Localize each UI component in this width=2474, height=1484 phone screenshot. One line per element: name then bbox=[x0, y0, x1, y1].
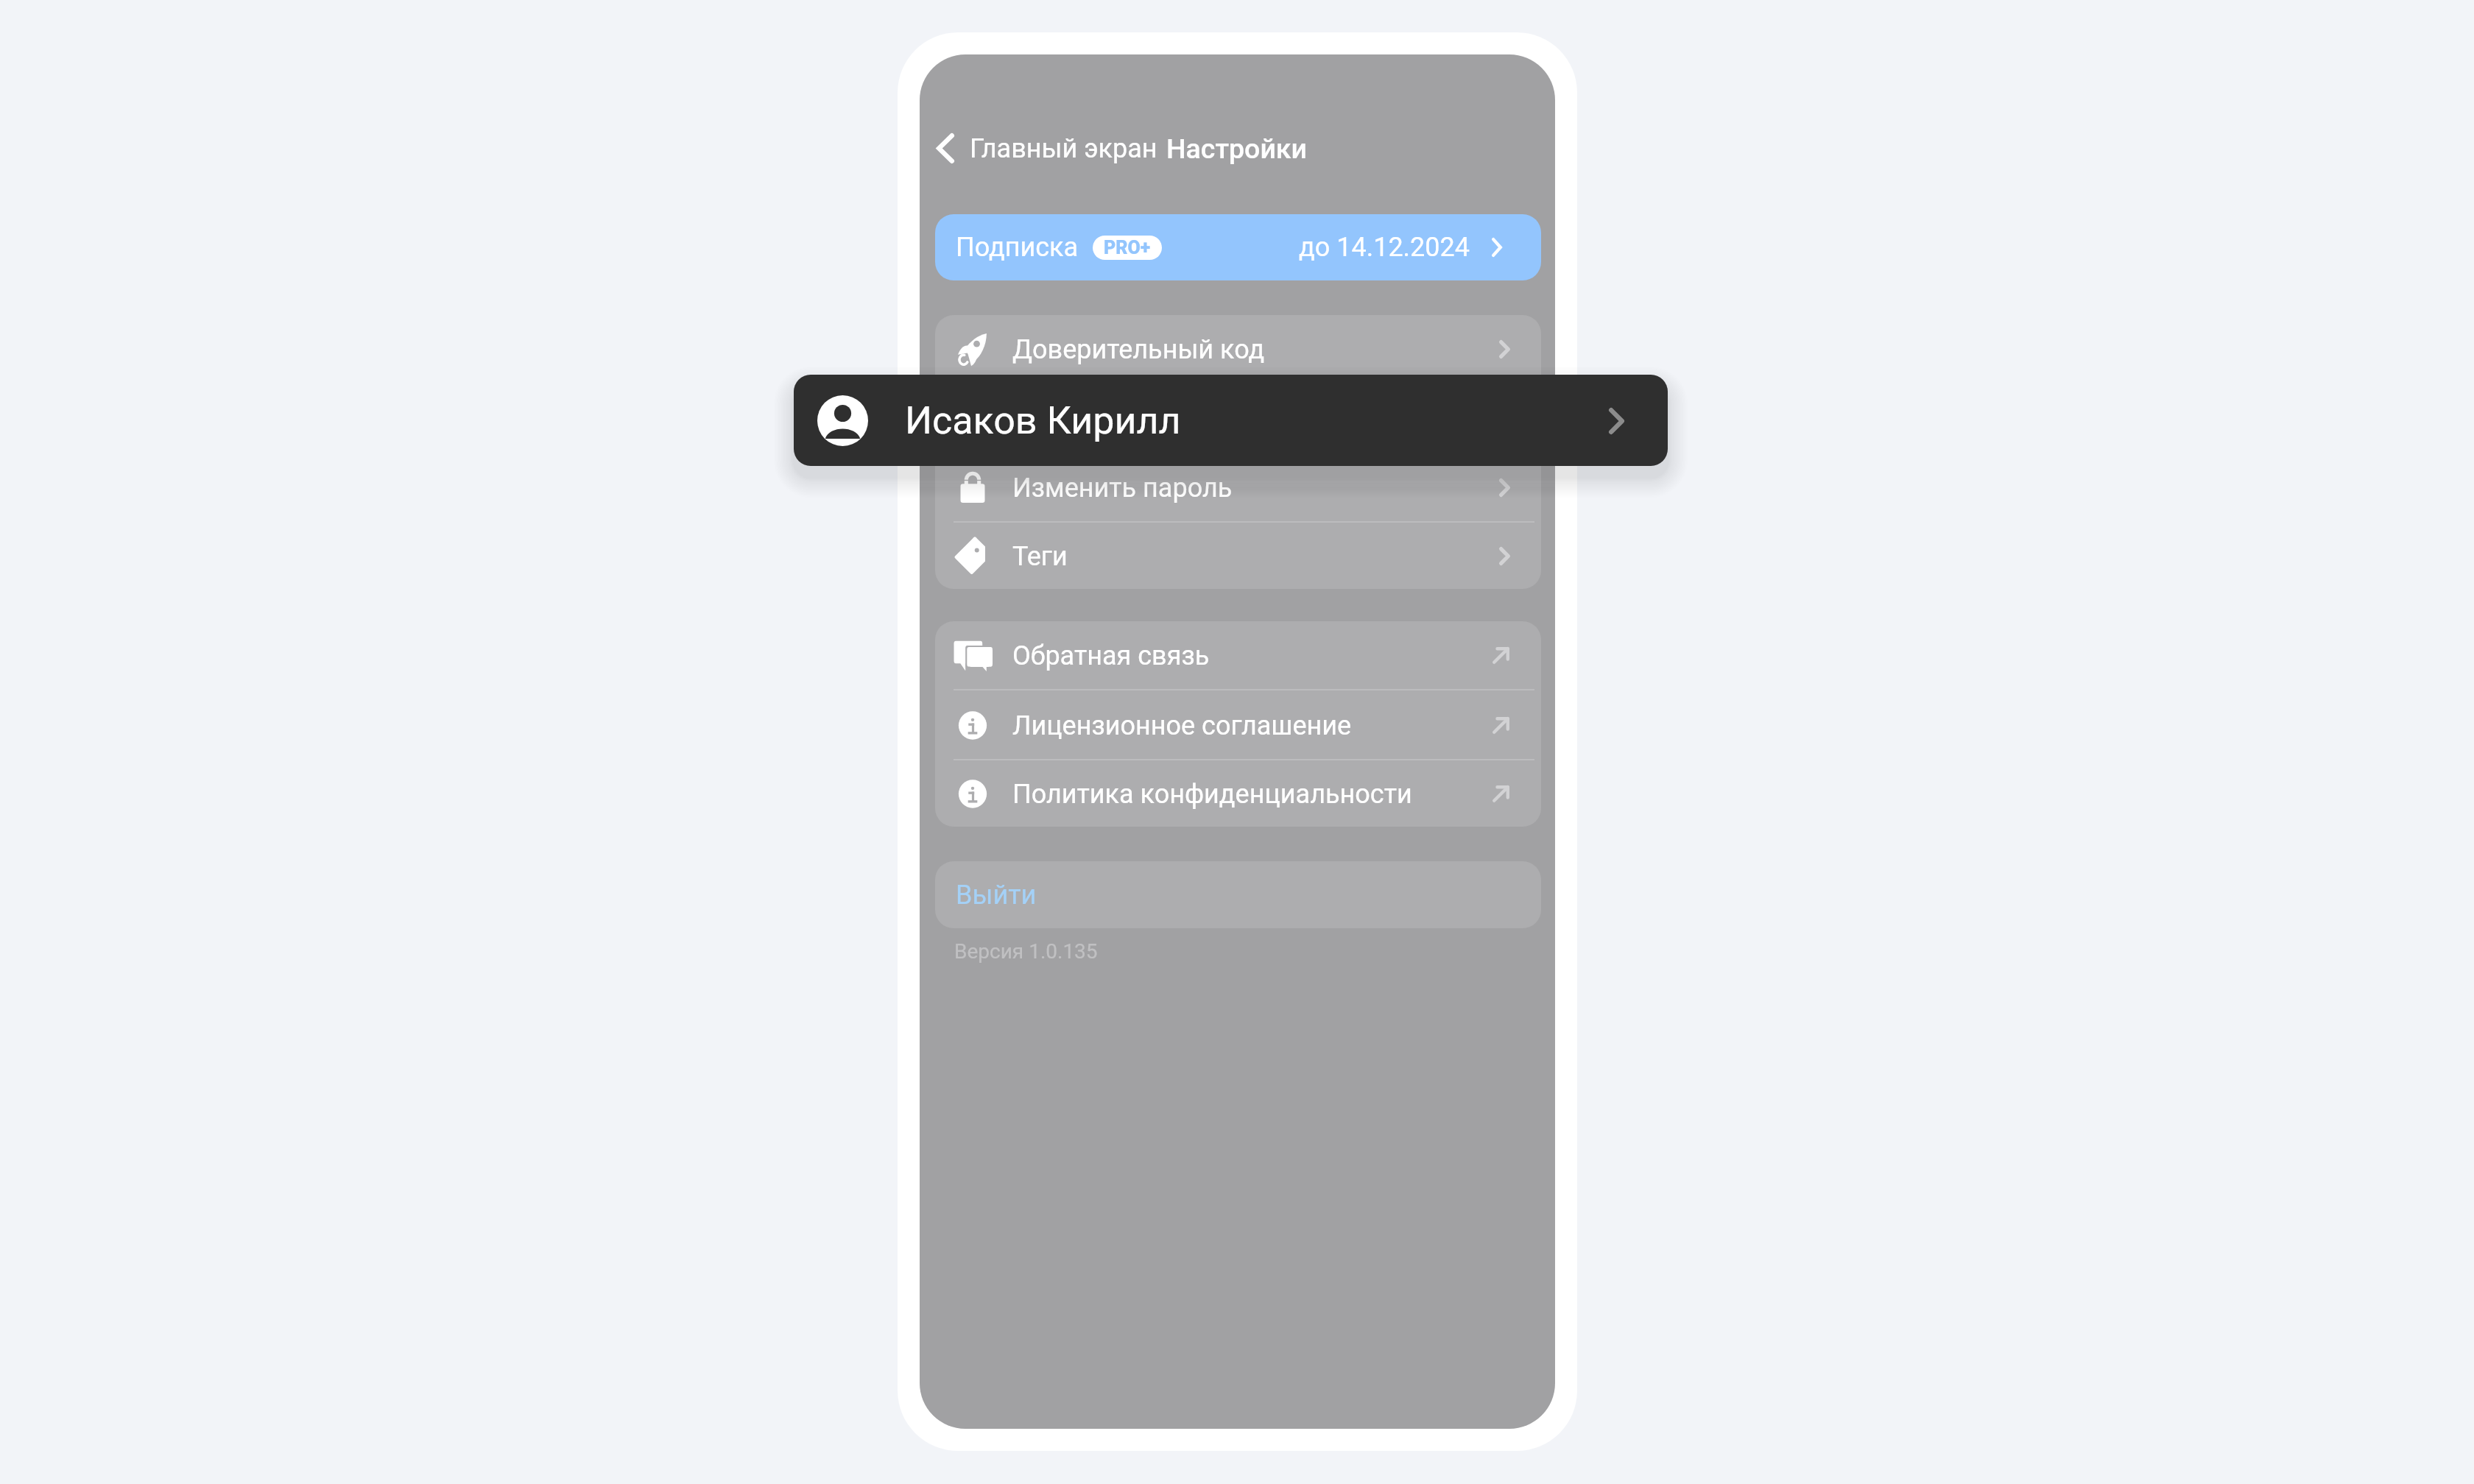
button[interactable]: Лицензионное соглашение bbox=[935, 691, 1541, 760]
staticText: Доверительный код bbox=[1012, 334, 1265, 365]
staticText: Политика конфиденциальности bbox=[1012, 779, 1412, 810]
staticText: Обратная связь bbox=[1012, 640, 1210, 671]
staticText: Главный экран bbox=[970, 133, 1157, 164]
staticText: Настройки bbox=[1166, 132, 1307, 165]
button[interactable]: Back bbox=[922, 117, 969, 180]
button[interactable]: Выйти bbox=[935, 861, 1541, 928]
staticText: PRO+ bbox=[1104, 237, 1151, 258]
button[interactable]: Исаков Кирилл bbox=[794, 375, 1668, 466]
button[interactable]: Политика конфиденциальности bbox=[935, 761, 1541, 827]
button[interactable]: Теги bbox=[935, 523, 1541, 589]
staticText: Версия 1.0.135 bbox=[954, 939, 1098, 964]
button[interactable]: Подписка bbox=[935, 214, 1541, 280]
staticText: Теги bbox=[1012, 541, 1068, 572]
staticText: Подписка bbox=[956, 232, 1079, 263]
button[interactable]: Обратная связь bbox=[935, 621, 1541, 690]
staticText: Исаков Кирилл bbox=[905, 398, 1181, 443]
button[interactable]: Изменить пароль bbox=[935, 453, 1541, 522]
button[interactable]: Доверительный код bbox=[935, 315, 1541, 384]
staticText: до 14.12.2024 bbox=[1299, 232, 1470, 263]
staticText: Лицензионное соглашение bbox=[1012, 710, 1352, 741]
staticText: Выйти bbox=[956, 880, 1037, 911]
staticText: Изменить пароль bbox=[1012, 473, 1233, 504]
